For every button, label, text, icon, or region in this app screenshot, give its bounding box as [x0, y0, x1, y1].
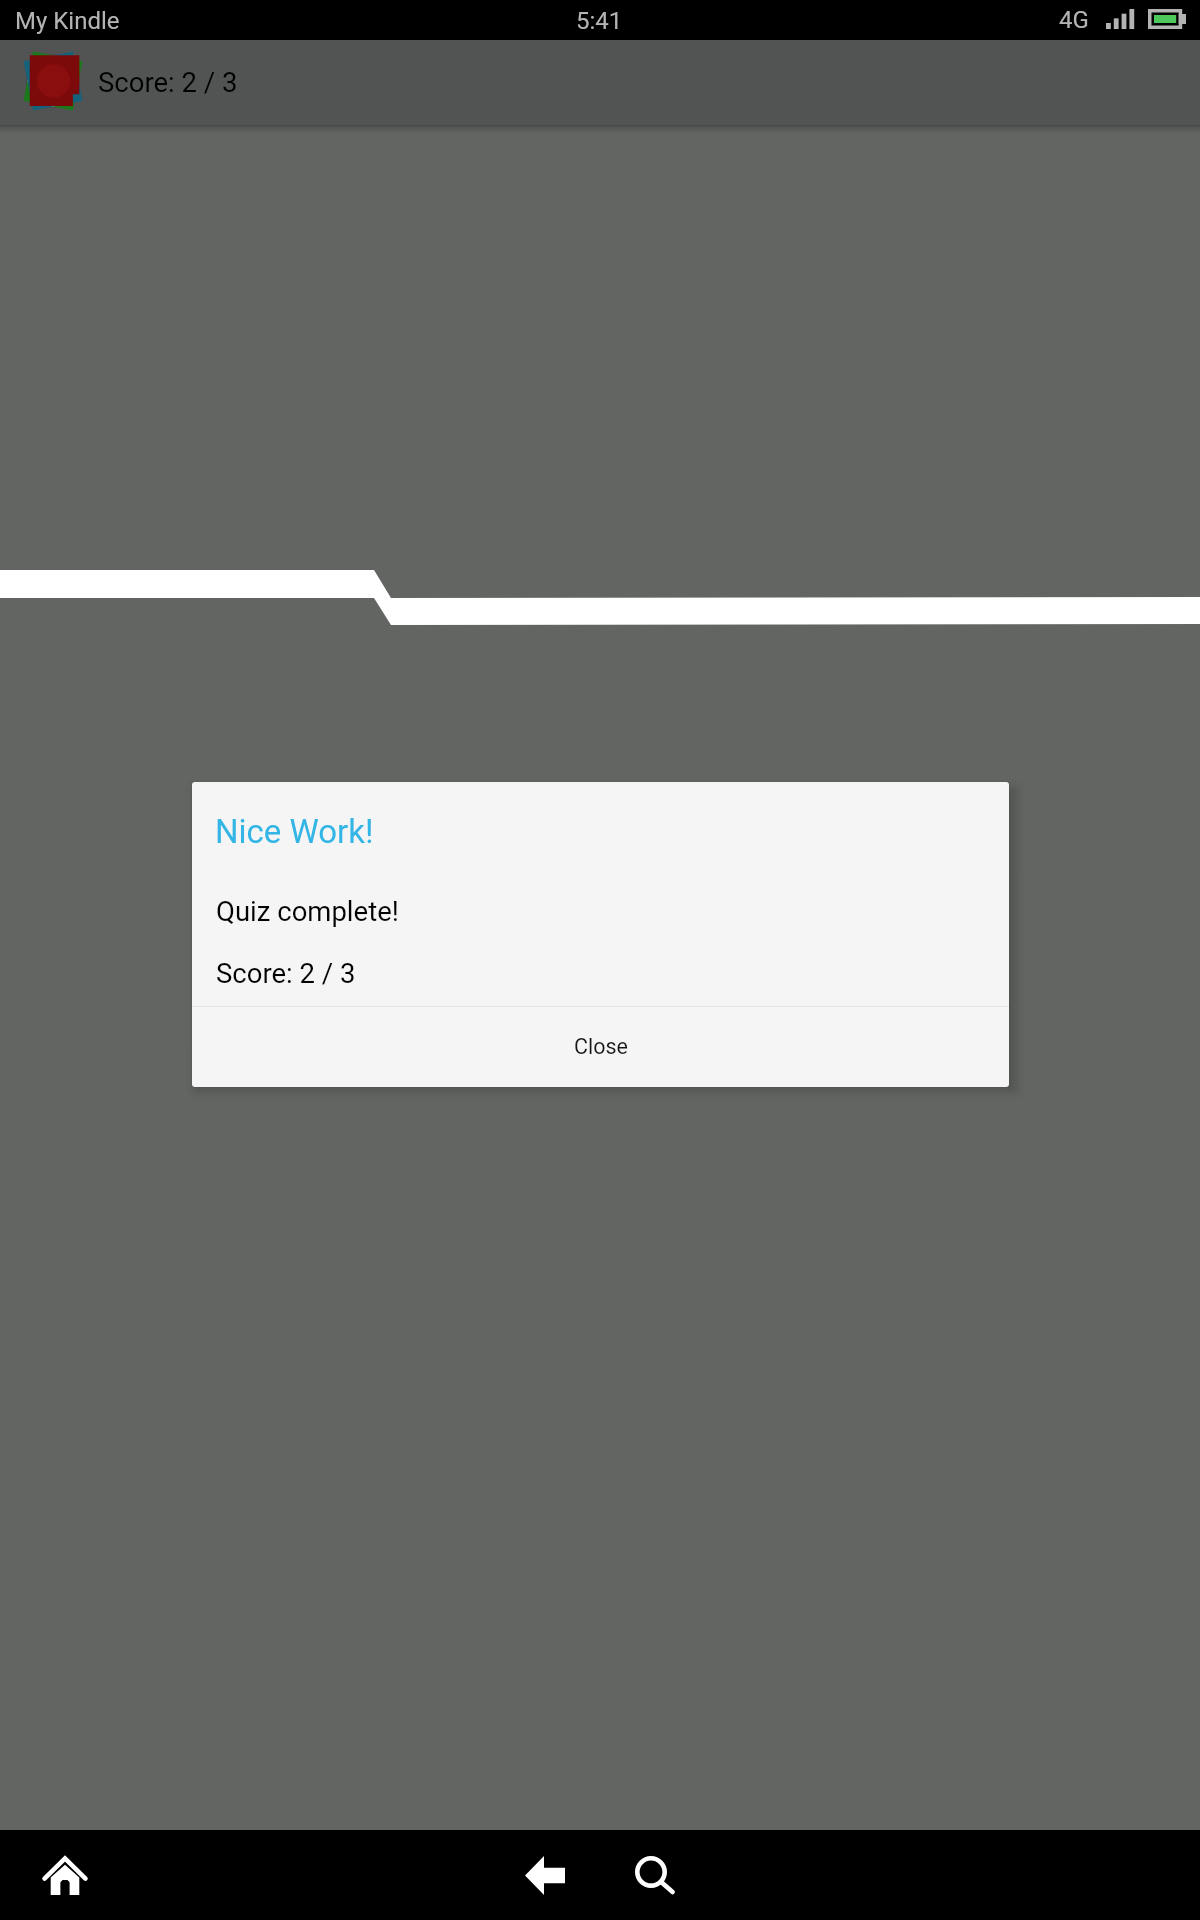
staticText: Nice Work!: [215, 812, 374, 851]
staticText: 5:41: [576, 7, 623, 35]
staticText: My Kindle: [15, 7, 120, 35]
button[interactable]: Home: [17, 1830, 113, 1920]
staticText: 4G: [1059, 6, 1089, 34]
button[interactable]: Close: [192, 1007, 1009, 1085]
staticText: Score: 2 / 3: [98, 66, 238, 98]
staticText: Close: [574, 1034, 628, 1059]
button[interactable]: Search: [607, 1830, 703, 1920]
button[interactable]: Back: [497, 1830, 593, 1920]
staticText: Score: 2 / 3: [216, 957, 356, 989]
button[interactable]: Score: 2 / 3: [0, 40, 260, 125]
staticText: Quiz complete!: [216, 895, 399, 927]
